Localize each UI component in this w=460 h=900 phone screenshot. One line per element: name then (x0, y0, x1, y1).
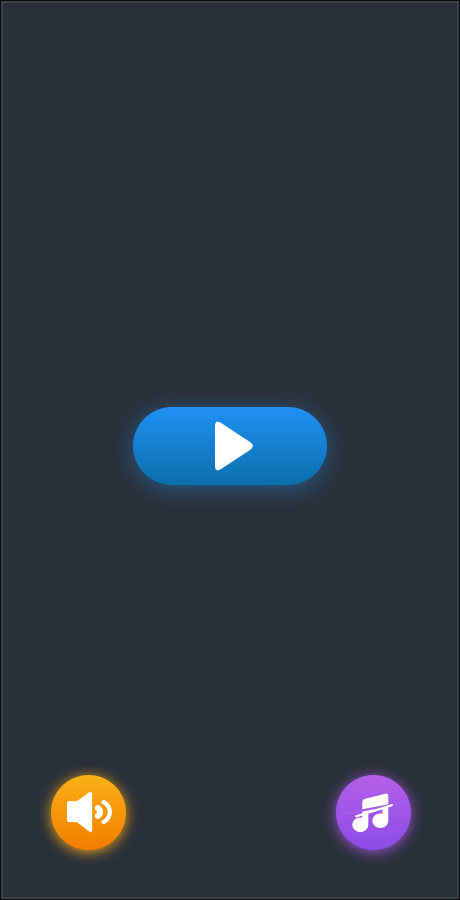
button[interactable]: Sound (51, 775, 126, 850)
button[interactable]: Music (336, 775, 411, 850)
button[interactable]: Play (133, 407, 327, 485)
